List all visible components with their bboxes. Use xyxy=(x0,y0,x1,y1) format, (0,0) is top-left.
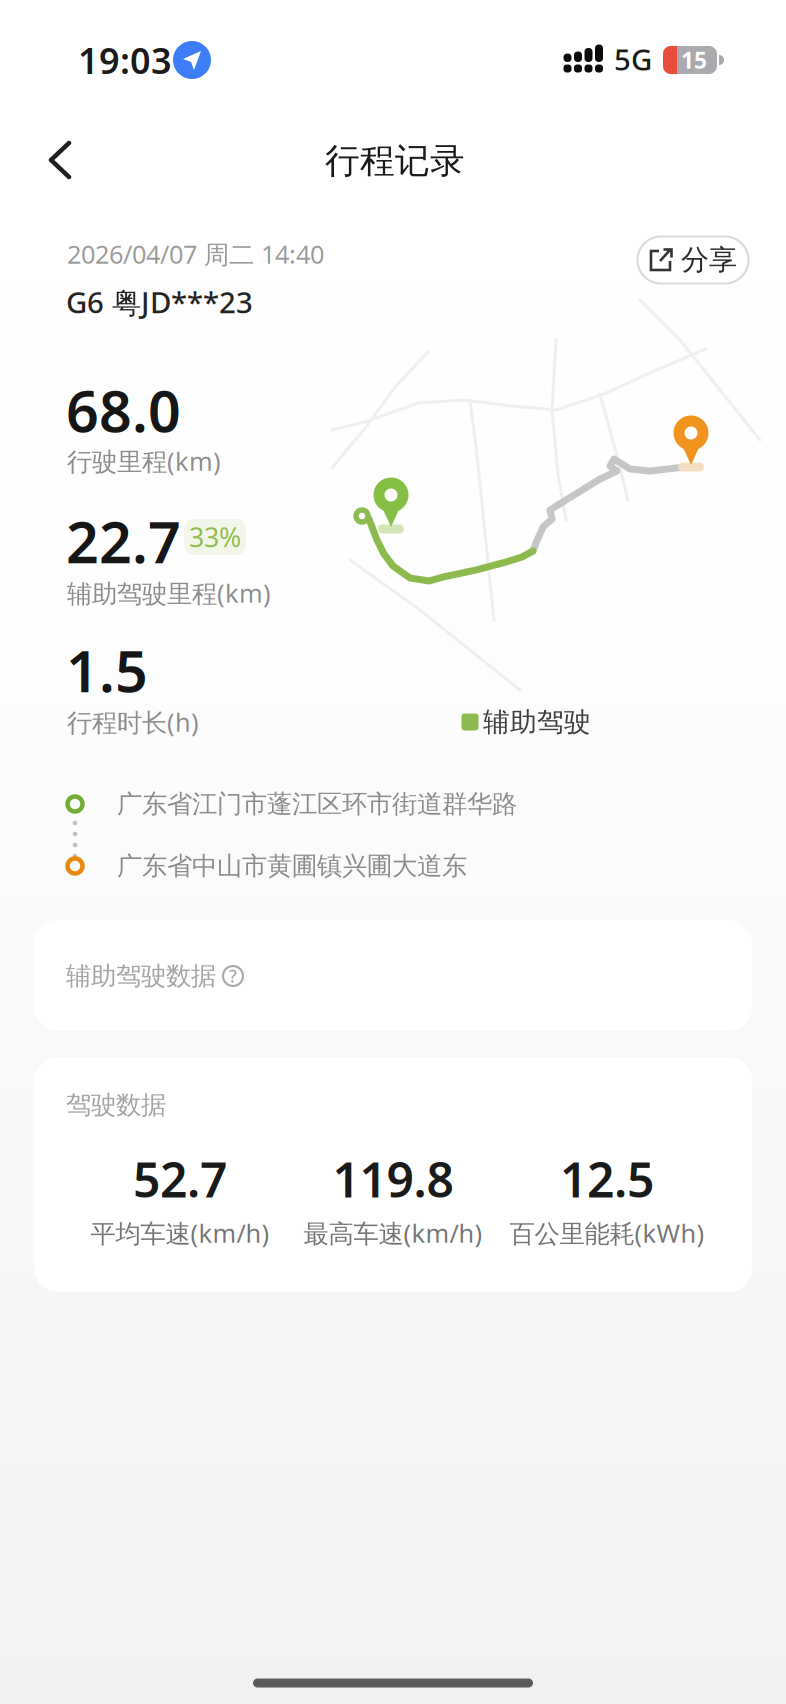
staticText: 22.7 xyxy=(66,503,181,579)
staticText: 19:03 xyxy=(78,36,172,84)
staticText: 广东省中山市黄圃镇兴圃大道东 xyxy=(117,850,467,881)
staticText: 1.5 xyxy=(66,632,148,708)
staticText: G6 粤JD***23 xyxy=(66,282,253,321)
staticText: 广东省江门市蓬江区环市街道群华路 xyxy=(117,788,517,819)
staticText: 15 xyxy=(681,45,707,75)
staticText: 辅助驾驶 xyxy=(483,706,591,738)
button[interactable]: 分享 xyxy=(636,235,749,284)
staticText: 百公里能耗(kWh) xyxy=(509,1216,704,1250)
button[interactable]: 返回 xyxy=(46,140,86,180)
staticText: 行程记录 xyxy=(325,140,465,182)
staticText: 最高车速(km/h) xyxy=(303,1216,482,1250)
staticText: 辅助驾驶数据 xyxy=(66,960,216,991)
staticText: 52.7 xyxy=(133,1147,227,1211)
staticText: ? xyxy=(229,964,237,987)
staticText: 12.5 xyxy=(560,1147,654,1211)
staticText: 5G xyxy=(614,39,652,78)
button[interactable]: 辅助驾驶数据说明 xyxy=(222,965,244,987)
staticText: 平均车速(km/h) xyxy=(90,1216,269,1250)
staticText: 2026/04/07 周二 14:40 xyxy=(67,237,324,271)
staticText: 68.0 xyxy=(66,372,181,448)
staticText: 驾驶数据 xyxy=(66,1089,166,1120)
staticText: 辅助驾驶里程(km) xyxy=(67,576,271,610)
staticText: 33% xyxy=(189,519,241,555)
staticText: 行程时长(h) xyxy=(67,705,199,739)
staticText: 119.8 xyxy=(332,1147,453,1211)
staticText: 行驶里程(km) xyxy=(67,444,221,478)
staticText: 分享 xyxy=(681,243,737,277)
